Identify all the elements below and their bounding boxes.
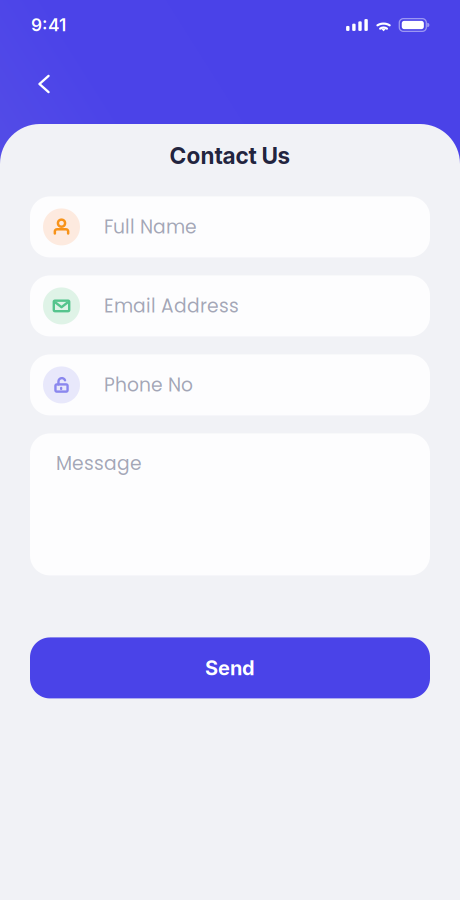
staticText: Full Name	[104, 214, 197, 240]
button[interactable]: Full Name	[30, 196, 430, 257]
staticText: Send	[205, 656, 255, 680]
staticText: Phone No	[104, 372, 193, 398]
button[interactable]: Message	[30, 433, 430, 575]
button[interactable]: Phone No	[30, 354, 430, 415]
button[interactable]: Back	[21, 61, 67, 107]
staticText: Contact Us	[169, 142, 290, 169]
button[interactable]: Send	[30, 637, 430, 698]
staticText: Message	[56, 450, 142, 476]
button[interactable]: Email Address	[30, 275, 430, 336]
staticText: Email Address	[104, 293, 239, 319]
staticText: 9:41	[31, 14, 66, 35]
